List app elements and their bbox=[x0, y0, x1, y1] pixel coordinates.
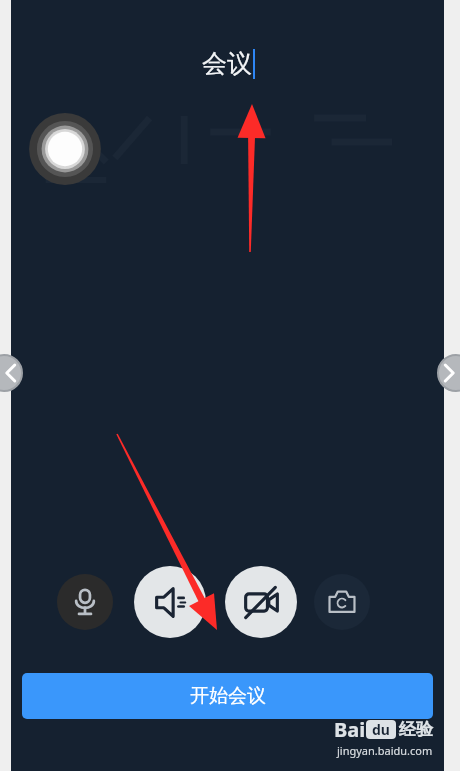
button[interactable]: Microphone bbox=[57, 574, 113, 630]
button[interactable]: Recording indicator bbox=[26, 110, 104, 188]
button[interactable]: Speaker bbox=[134, 566, 206, 638]
staticText: du bbox=[372, 720, 390, 739]
staticText: jingyan.baidu.com bbox=[337, 743, 433, 758]
staticText: 开始会议 bbox=[190, 684, 266, 708]
staticText: 会议 bbox=[202, 48, 252, 79]
staticText: Bai bbox=[334, 716, 366, 743]
button[interactable]: Switch camera bbox=[314, 574, 370, 630]
button[interactable]: Next bbox=[438, 355, 460, 391]
button[interactable]: Previous bbox=[0, 355, 22, 391]
staticText: 经验 bbox=[399, 719, 433, 740]
button[interactable]: Camera off bbox=[225, 566, 297, 638]
button[interactable]: 会议 bbox=[202, 48, 254, 79]
button[interactable]: 开始会议 bbox=[22, 673, 433, 719]
